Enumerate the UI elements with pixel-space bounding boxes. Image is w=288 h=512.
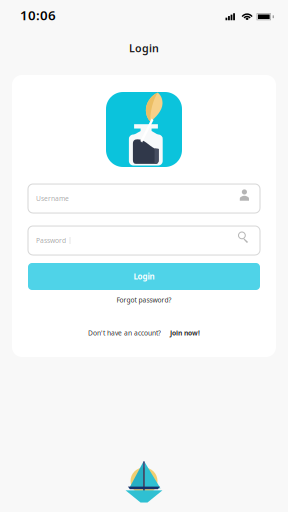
staticText: Forgot password? (116, 296, 171, 304)
button[interactable]: Password (28, 226, 260, 255)
staticText: 10:06 (20, 6, 56, 24)
staticText: Login (133, 271, 154, 282)
button[interactable]: Login (28, 263, 260, 290)
staticText: Password (36, 236, 66, 245)
staticText: Login (129, 41, 159, 55)
button[interactable]: Forgot password? (116, 294, 171, 306)
staticText: Username (36, 194, 69, 203)
button[interactable]: Username (28, 184, 260, 213)
staticText: Don't have an account? (88, 329, 161, 337)
button[interactable]: Join now! (170, 329, 200, 337)
staticText: Join now! (170, 329, 200, 337)
